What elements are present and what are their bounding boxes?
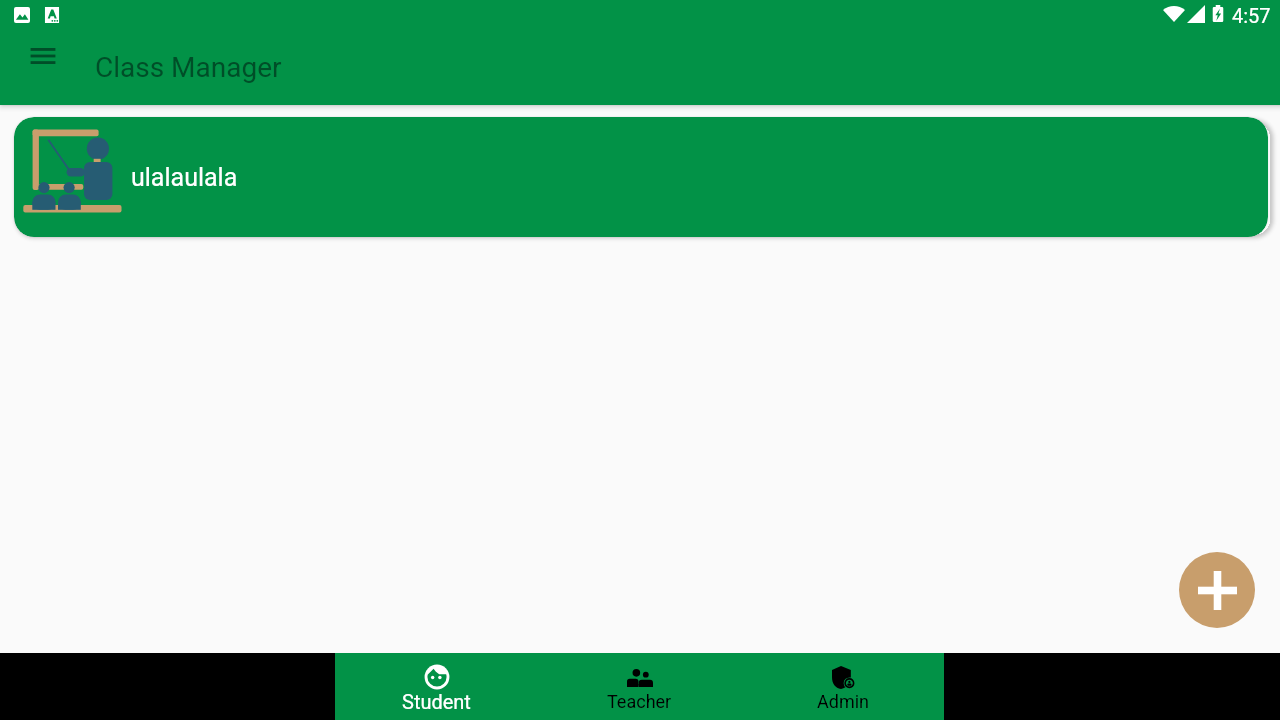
staticText: 4:57 <box>1232 4 1271 27</box>
button[interactable]: Admin <box>741 653 944 720</box>
button[interactable]: Teacher <box>538 653 741 720</box>
button[interactable]: Open navigation menu <box>20 33 66 79</box>
button[interactable]: Add <box>1179 552 1255 628</box>
staticText: ulalaulala <box>131 163 238 192</box>
staticText: Student <box>402 690 471 713</box>
staticText: Class Manager <box>95 51 282 84</box>
button[interactable]: Student <box>335 653 538 720</box>
button[interactable]: ulalaulala <box>14 117 1268 237</box>
staticText: Teacher <box>607 691 672 712</box>
staticText: Admin <box>817 691 869 712</box>
